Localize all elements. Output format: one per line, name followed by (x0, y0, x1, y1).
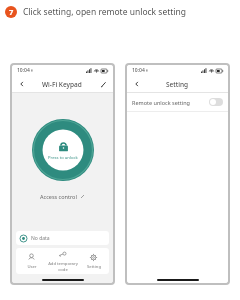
button[interactable]: Access control (38, 191, 87, 202)
staticText: User (27, 264, 37, 270)
staticText: Access control (40, 193, 77, 200)
button[interactable]: Setting (78, 248, 109, 274)
staticText: Setting (166, 80, 189, 89)
staticText: 10:04 (17, 67, 30, 74)
button[interactable]: Press to unlock (32, 119, 94, 181)
staticText: Wi-Fi Keypad (42, 80, 82, 89)
staticText: Add temporary code (48, 261, 78, 272)
staticText: Click setting, open remote unlock settin… (23, 6, 187, 18)
button[interactable]: Add temporary code (47, 248, 78, 274)
button[interactable]: Edit (98, 79, 108, 89)
staticText: 10:04 (132, 67, 145, 74)
staticText: Setting (87, 264, 101, 270)
staticText: No data (31, 235, 50, 242)
staticText: Remote unlock setting (132, 99, 190, 106)
staticText: 7 (9, 7, 14, 17)
button[interactable]: Back (17, 79, 27, 89)
button[interactable]: Back (132, 79, 142, 89)
button[interactable]: No data (16, 231, 109, 245)
button[interactable]: User (16, 248, 47, 274)
staticText: Press to unlock (48, 155, 78, 161)
button[interactable]: Remote unlock setting (127, 93, 228, 111)
